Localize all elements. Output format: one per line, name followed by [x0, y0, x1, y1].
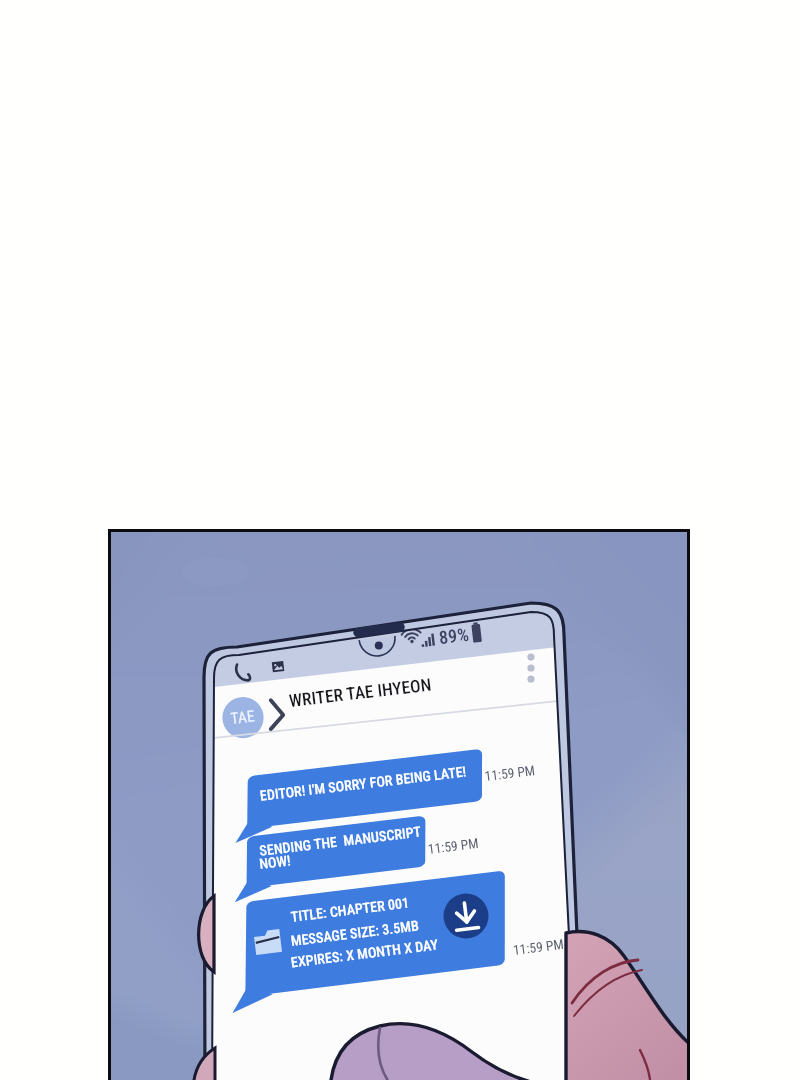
- button[interactable]: Comic panel: a hand holding a phone show…: [0, 0, 800, 1080]
